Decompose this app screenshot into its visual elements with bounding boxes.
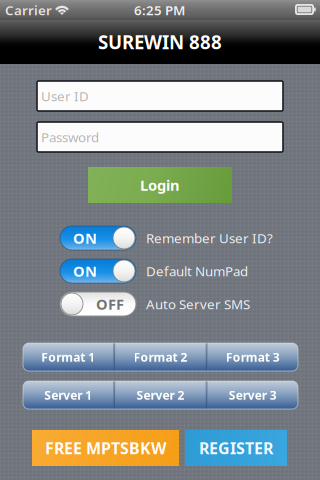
staticText: Server 2 xyxy=(136,387,184,403)
staticText: Format 1 xyxy=(41,349,95,365)
button[interactable]: OFF xyxy=(60,292,136,316)
button[interactable]: Server 2 xyxy=(115,381,206,409)
button[interactable]: Format 1 xyxy=(23,343,113,371)
button[interactable]: Server 3 xyxy=(207,381,298,409)
staticText: Server 3 xyxy=(229,387,277,403)
staticText: Format 2 xyxy=(133,349,187,365)
button[interactable]: Format 3 xyxy=(207,343,298,371)
staticText: REGISTER xyxy=(199,437,273,459)
button[interactable]: Password xyxy=(37,122,283,152)
staticText: ON xyxy=(73,261,97,281)
staticText: Format 3 xyxy=(226,349,280,365)
button[interactable]: Server 1 xyxy=(23,381,113,409)
button[interactable]: Login xyxy=(88,167,232,203)
staticText: User ID xyxy=(41,87,89,105)
staticText: OFF xyxy=(96,294,124,314)
staticText: FREE MPTSBKW xyxy=(45,437,166,459)
button[interactable]: ON xyxy=(60,226,136,250)
button[interactable]: User ID xyxy=(37,81,283,111)
staticText: Carrier xyxy=(5,1,52,19)
button[interactable]: Format 2 xyxy=(115,343,206,371)
staticText: SUREWIN 888 xyxy=(98,30,222,54)
button[interactable]: FREE MPTSBKW xyxy=(32,430,179,466)
staticText: Default NumPad xyxy=(146,262,248,280)
staticText: Server 1 xyxy=(44,387,92,403)
button[interactable]: ON xyxy=(60,259,136,283)
staticText: Auto Server SMS xyxy=(146,295,250,313)
staticText: Password xyxy=(41,128,99,146)
staticText: Remember User ID? xyxy=(146,229,273,247)
button[interactable]: REGISTER xyxy=(185,430,287,466)
staticText: Login xyxy=(140,175,180,195)
staticText: 6:25 PM xyxy=(134,1,185,19)
staticText: ON xyxy=(73,228,97,248)
